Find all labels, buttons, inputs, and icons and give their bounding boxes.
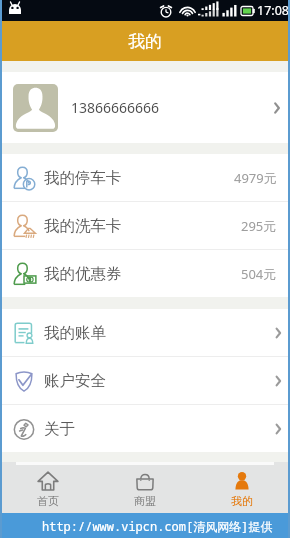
button[interactable]: 关于 bbox=[0, 405, 290, 452]
staticText: 13866666666 bbox=[71, 98, 160, 117]
staticText: 我的账单 bbox=[44, 323, 106, 343]
staticText: 295元 bbox=[241, 217, 277, 235]
staticText: 17:08 bbox=[257, 2, 289, 19]
button[interactable]: 商盟 bbox=[96, 462, 193, 513]
staticText: 商盟 bbox=[134, 494, 156, 508]
button[interactable]: 我的账单 bbox=[0, 309, 290, 356]
button[interactable]: 首页 bbox=[0, 462, 96, 513]
staticText: 我的停车卡 bbox=[44, 168, 122, 188]
button[interactable]: 我的停车卡 bbox=[0, 154, 290, 201]
staticText: 我的 bbox=[128, 31, 162, 52]
staticText: 账户安全 bbox=[44, 371, 106, 391]
button[interactable]: 我的优惠券 bbox=[0, 250, 290, 297]
staticText: 4979元 bbox=[234, 169, 277, 187]
staticText: 我的优惠券 bbox=[44, 264, 122, 284]
staticText: http://www.vipcn.com[清风网络]提供 bbox=[42, 518, 273, 534]
staticText: 首页 bbox=[37, 494, 59, 508]
button[interactable]: 我的洗车卡 bbox=[0, 202, 290, 249]
button[interactable]: 13866666666 bbox=[0, 72, 290, 143]
staticText: 关于 bbox=[44, 419, 75, 439]
staticText: 我的 bbox=[231, 494, 253, 508]
button[interactable]: 我的 bbox=[193, 462, 290, 513]
staticText: 504元 bbox=[241, 265, 277, 283]
staticText: 我的洗车卡 bbox=[44, 216, 122, 236]
button[interactable]: 账户安全 bbox=[0, 357, 290, 404]
